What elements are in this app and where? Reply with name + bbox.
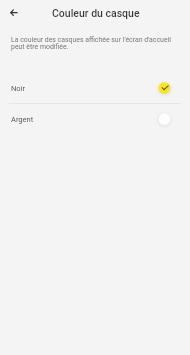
staticText: La couleur des casques affichée sur l'éc… [11, 36, 179, 51]
button[interactable]: Back [3, 3, 23, 23]
staticText: Couleur du casque [52, 7, 140, 19]
button[interactable]: Noir [0, 73, 190, 103]
button[interactable]: Argent [0, 104, 190, 134]
staticText: Noir [11, 84, 25, 93]
staticText: Argent [11, 115, 34, 124]
